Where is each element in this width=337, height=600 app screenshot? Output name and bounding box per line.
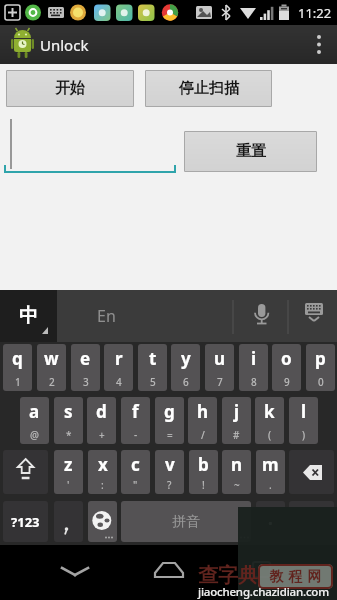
staticText: u (214, 347, 226, 370)
staticText: k (264, 400, 275, 423)
staticText: 教程网 (267, 568, 324, 586)
staticText: 9 (284, 375, 290, 389)
button[interactable] (138, 550, 198, 595)
staticText: l (301, 400, 307, 423)
staticText: ( (268, 428, 272, 442)
staticText: jiaocheng.chazidian.com (198, 584, 329, 600)
staticText: p (315, 347, 326, 370)
button[interactable] (121, 501, 251, 542)
staticText: c (131, 453, 140, 476)
button[interactable]: n (222, 450, 251, 494)
button[interactable] (88, 501, 117, 542)
staticText: * (66, 428, 72, 442)
button[interactable] (54, 501, 83, 542)
button[interactable]: 停止扫描 (145, 70, 272, 107)
button[interactable]: l (289, 397, 318, 444)
button[interactable]: m (256, 450, 285, 494)
staticText: # (233, 428, 240, 442)
button[interactable]: v (155, 450, 184, 494)
staticText: 7 (217, 375, 223, 389)
button[interactable] (289, 501, 334, 542)
button[interactable]: En (80, 290, 132, 342)
staticText: w (44, 347, 59, 370)
staticText: = (167, 428, 173, 442)
staticText: 重置 (236, 142, 266, 161)
button[interactable]: q (3, 344, 32, 391)
staticText: En (97, 305, 116, 327)
button[interactable]: d (87, 397, 116, 444)
staticText: ' (67, 478, 70, 492)
staticText: @ (30, 428, 39, 442)
button[interactable]: o (272, 344, 301, 391)
staticText: j (234, 400, 240, 423)
button[interactable] (3, 501, 48, 542)
staticText: g (164, 400, 175, 423)
button[interactable]: e (71, 344, 100, 391)
staticText: 4 (116, 375, 122, 389)
staticText: / (201, 428, 205, 442)
staticText: e (80, 347, 91, 370)
button[interactable]: 中 (0, 290, 57, 342)
staticText: y (181, 347, 191, 370)
staticText: m (262, 453, 279, 476)
button[interactable]: k (255, 397, 284, 444)
staticText: 开始 (55, 79, 85, 98)
button[interactable]: b (189, 450, 218, 494)
staticText: h (197, 400, 209, 423)
staticText: 5 (150, 375, 156, 389)
staticText: b (198, 453, 209, 476)
staticText: ~ (234, 478, 240, 492)
button[interactable]: g (155, 397, 184, 444)
staticText: q (12, 347, 23, 370)
staticText: v (165, 453, 175, 476)
button[interactable]: h (188, 397, 217, 444)
button[interactable]: t (138, 344, 167, 391)
button[interactable]: c (121, 450, 150, 494)
staticText: 6 (183, 375, 189, 389)
staticText: - (134, 428, 138, 442)
staticText: Unlock (40, 35, 89, 55)
staticText: 查字典 (198, 563, 258, 588)
staticText: " (133, 478, 138, 492)
staticText: r (115, 347, 123, 370)
button[interactable]: 开始 (6, 70, 134, 107)
button[interactable]: p (306, 344, 335, 391)
staticText: s (64, 400, 73, 423)
button[interactable]: 重置 (184, 131, 317, 172)
button[interactable]: z (54, 450, 83, 494)
staticText: 8 (251, 375, 257, 389)
button[interactable]: j (222, 397, 251, 444)
staticText: x (98, 453, 108, 476)
button[interactable]: u (205, 344, 234, 391)
staticText: 拼音 (172, 513, 200, 531)
button[interactable]: r (104, 344, 133, 391)
staticText: ! (202, 478, 205, 492)
button[interactable] (289, 450, 334, 494)
staticText: 2 (49, 375, 55, 389)
button[interactable] (45, 550, 105, 595)
staticText: 1 (15, 375, 21, 389)
button[interactable]: x (88, 450, 117, 494)
staticText: i (251, 347, 257, 370)
staticText: n (231, 453, 243, 476)
staticText: t (149, 347, 157, 370)
button[interactable] (3, 450, 48, 494)
staticText: o (281, 347, 292, 370)
button[interactable]: y (171, 344, 200, 391)
button[interactable]: s (54, 397, 83, 444)
staticText: 中 (19, 304, 38, 328)
staticText: d (96, 400, 107, 423)
staticText: f (132, 400, 139, 423)
button[interactable] (256, 501, 285, 542)
staticText: ?123 (11, 513, 40, 531)
staticText: 3 (83, 375, 89, 389)
button[interactable]: i (239, 344, 268, 391)
staticText: ) (302, 428, 306, 442)
staticText: + (99, 428, 105, 442)
button[interactable]: w (37, 344, 66, 391)
staticText: z (64, 453, 73, 476)
button[interactable]: f (121, 397, 150, 444)
button[interactable]: a (20, 397, 49, 444)
staticText: a (29, 400, 40, 423)
